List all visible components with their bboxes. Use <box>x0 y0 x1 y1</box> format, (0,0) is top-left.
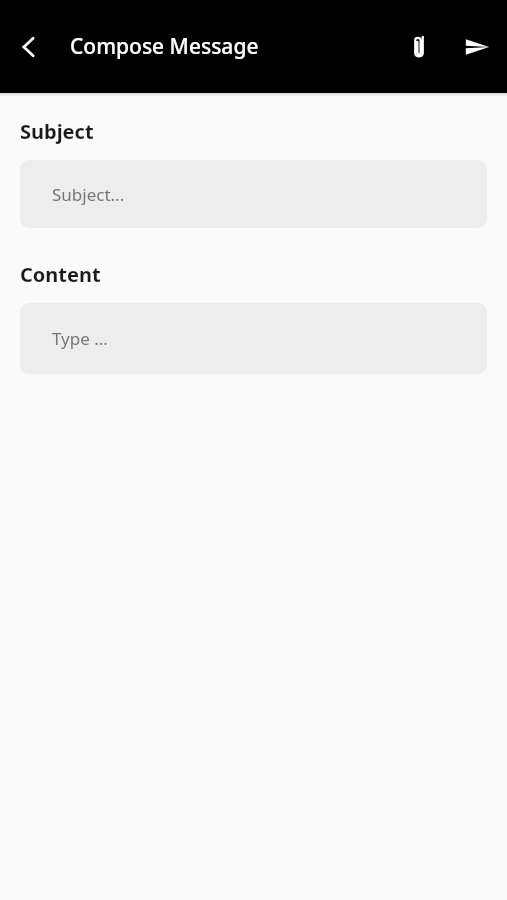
staticText: Content <box>20 261 101 288</box>
button[interactable]: Back <box>8 26 50 68</box>
button[interactable]: Subject... <box>20 160 487 228</box>
staticText: Compose Message <box>70 32 259 61</box>
button[interactable]: Send <box>454 24 500 70</box>
staticText: Type ... <box>52 327 108 350</box>
staticText: Subject <box>20 118 94 145</box>
staticText: Subject... <box>52 183 125 206</box>
button[interactable]: Attach file <box>396 24 442 70</box>
button[interactable]: Type ... <box>20 303 487 374</box>
